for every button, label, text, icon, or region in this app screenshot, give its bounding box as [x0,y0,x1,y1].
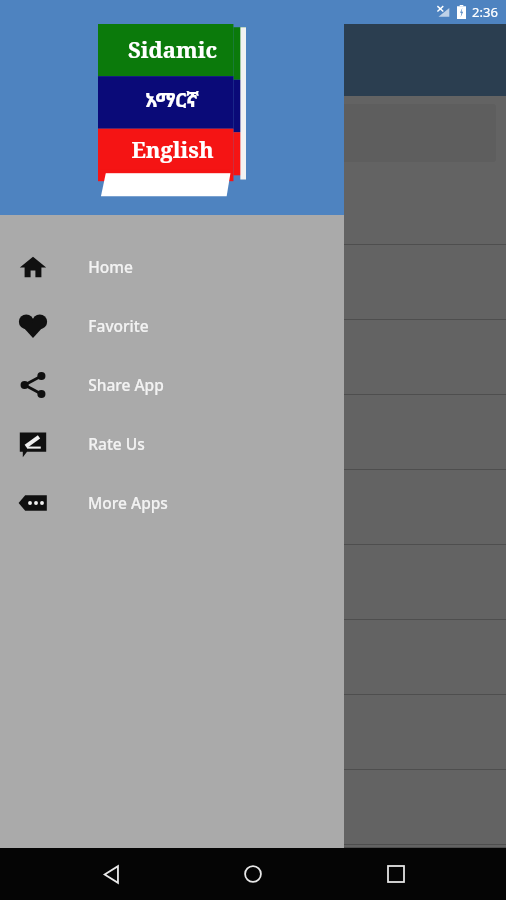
staticText: English [131,134,214,164]
button[interactable]: More Apps [0,473,344,532]
other: Share App [18,370,48,400]
staticText: More Apps [88,492,168,513]
button[interactable]: Recent apps [364,848,428,900]
staticText: Sidamic [128,34,217,64]
staticText: Home [88,256,133,277]
button[interactable]: Share App [0,355,344,414]
button[interactable]: Home [0,237,344,296]
other: Favorite [18,311,48,341]
staticText: Favorite [88,315,149,336]
button[interactable]: Rate Us [0,414,344,473]
other: More Apps [18,488,48,518]
staticText: 2:36 [472,3,498,21]
other: Home [18,252,48,282]
staticText: Share App [88,374,164,395]
button[interactable]: Home [221,848,285,900]
staticText: አማርኛ [145,86,199,113]
other: Rate Us [18,429,48,459]
button[interactable]: Favorite [0,296,344,355]
button[interactable]: Back [79,848,143,900]
staticText: Rate Us [88,433,145,454]
